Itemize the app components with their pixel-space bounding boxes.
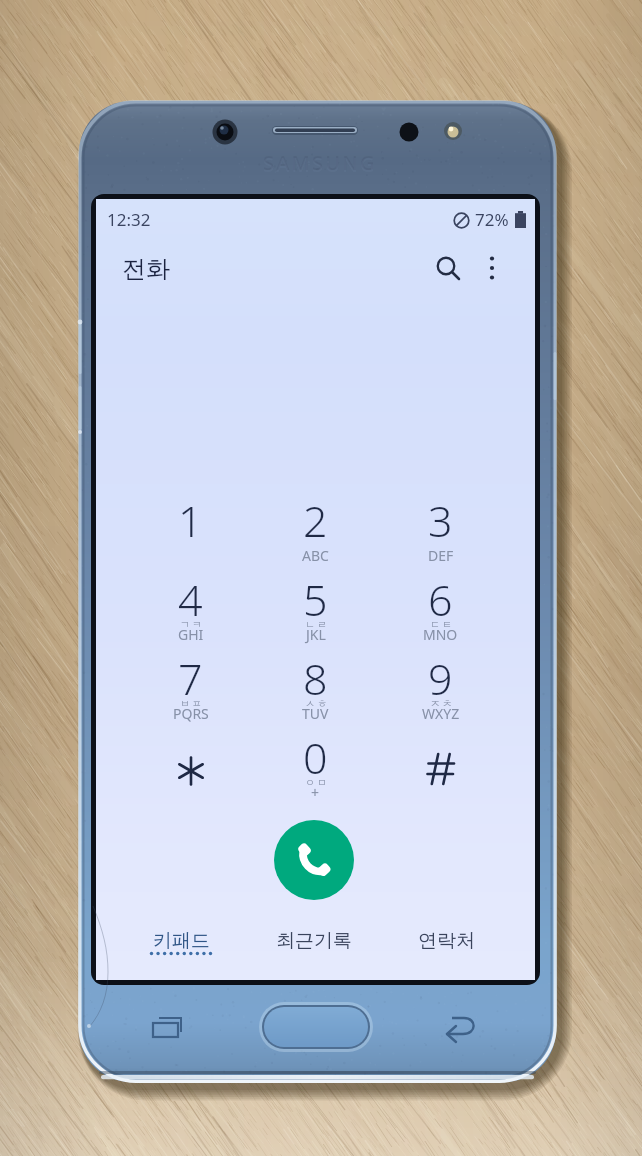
staticText: 2	[303, 491, 328, 550]
staticText: GHI	[178, 625, 204, 644]
staticText: PQRS	[173, 704, 209, 723]
staticText: MNO	[423, 625, 458, 644]
button[interactable]: Search	[426, 246, 470, 290]
staticText: ABC	[302, 546, 329, 565]
staticText: ㅈㅊ	[429, 697, 453, 710]
button[interactable]: 연락처	[384, 911, 508, 969]
staticText: ㅇㅁ	[304, 776, 328, 789]
button[interactable]: Call	[274, 820, 354, 900]
button[interactable]: 5	[253, 563, 378, 642]
staticText: ㅅㅎ	[304, 697, 328, 710]
staticText: DEF	[428, 546, 454, 565]
staticText: ㄷㅌ	[429, 618, 453, 631]
staticText: 1	[178, 491, 203, 550]
staticText: ㅂㅍ	[179, 697, 203, 710]
staticText: 6	[428, 570, 453, 629]
staticText: 8	[303, 649, 328, 708]
button[interactable]: 8	[253, 642, 378, 721]
button[interactable]: 3	[378, 484, 503, 563]
button[interactable]	[128, 721, 253, 800]
staticText: 3	[428, 491, 453, 550]
staticText: 연락처	[418, 929, 475, 953]
staticText: 최근기록	[276, 929, 352, 953]
button[interactable]: 1	[128, 484, 253, 563]
staticText: 0	[303, 728, 328, 787]
staticText: ㄴㄹ	[304, 618, 328, 631]
button[interactable]: 키패드	[119, 911, 243, 969]
button[interactable]: 2	[253, 484, 378, 563]
staticText: ㄱㅋ	[179, 618, 203, 631]
staticText: 7	[178, 649, 203, 708]
button[interactable]: 7	[128, 642, 253, 721]
staticText: 9	[428, 649, 453, 708]
staticText: 72%	[475, 208, 509, 231]
staticText: WXYZ	[422, 704, 460, 723]
button[interactable]	[378, 721, 503, 800]
staticText: TUV	[302, 704, 329, 723]
staticText: +	[311, 783, 320, 802]
button[interactable]: 0	[253, 721, 378, 800]
button[interactable]: More options	[470, 246, 514, 290]
staticText: 5	[303, 570, 328, 629]
staticText: 키패드	[153, 929, 210, 953]
staticText: 4	[178, 570, 203, 629]
staticText: JKL	[306, 625, 326, 644]
button[interactable]: 4	[128, 563, 253, 642]
staticText: 12:32	[107, 208, 151, 231]
button[interactable]: 6	[378, 563, 503, 642]
button[interactable]: 9	[378, 642, 503, 721]
button[interactable]: 최근기록	[252, 911, 376, 969]
staticText: 전화	[122, 254, 170, 284]
